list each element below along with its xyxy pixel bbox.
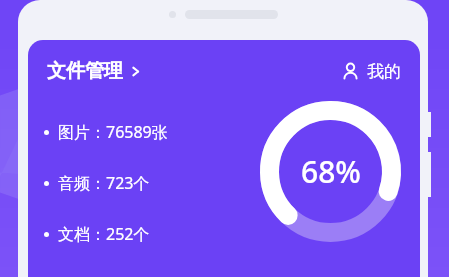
staticText: 我的	[367, 61, 401, 82]
staticText: 68%	[301, 151, 361, 192]
other: My account	[341, 62, 360, 81]
button[interactable]: 文件管理	[44, 56, 144, 86]
staticText: 图片：76589张	[58, 121, 168, 143]
staticText: 音频：723个	[58, 172, 150, 194]
staticText: 文件管理	[47, 59, 123, 83]
staticText: 文档：252个	[58, 223, 150, 245]
button[interactable]: My account	[338, 58, 404, 85]
